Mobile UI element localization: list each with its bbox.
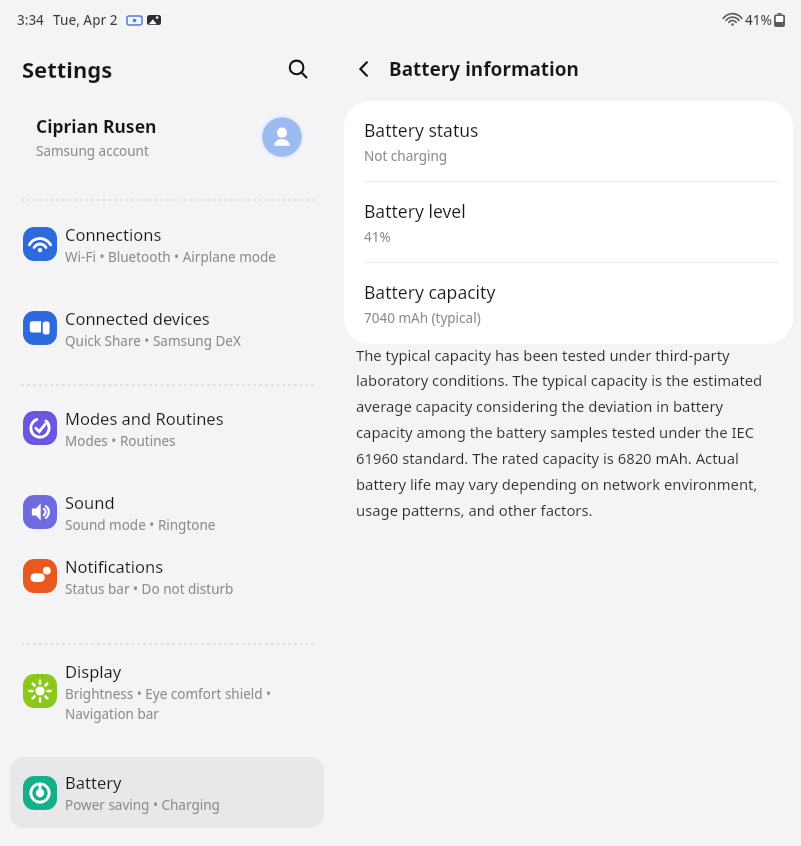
staticText: Display xyxy=(65,660,122,682)
staticText: Status bar • Do not disturb xyxy=(65,580,234,598)
staticText: Wi-Fi • Bluetooth • Airplane mode xyxy=(65,248,276,266)
staticText: Battery information xyxy=(389,56,579,82)
staticText: Modes and Routines xyxy=(65,407,224,429)
staticText: Battery status xyxy=(364,118,479,142)
staticText: Connections xyxy=(65,223,162,245)
staticText: Quick Share • Samsung DeX xyxy=(65,332,241,350)
staticText: Samsung account xyxy=(36,142,149,160)
staticText: Notifications xyxy=(65,555,164,577)
button[interactable]: Search xyxy=(278,49,318,89)
staticText: Sound mode • Ringtone xyxy=(65,516,216,534)
staticText: 7040 mAh (typical) xyxy=(364,309,481,327)
staticText: Power saving • Charging xyxy=(65,796,220,814)
button[interactable]: Connected devices xyxy=(0,296,336,360)
staticText: Brightness • Eye comfort shield • Naviga… xyxy=(65,685,272,723)
button[interactable]: Notifications xyxy=(0,544,336,608)
button[interactable]: Modes and Routines xyxy=(0,396,336,460)
staticText: Connected devices xyxy=(65,307,210,329)
staticText: Settings xyxy=(22,54,113,84)
button[interactable]: Battery status xyxy=(344,101,793,182)
staticText: Battery level xyxy=(364,199,466,223)
staticText: Sound xyxy=(65,491,115,513)
staticText: Ciprian Rusen xyxy=(36,114,157,138)
button[interactable]: Sound xyxy=(0,480,336,544)
staticText: 3:34 xyxy=(17,11,44,29)
staticText: Battery capacity xyxy=(364,280,496,304)
staticText: The typical capacity has been tested und… xyxy=(356,345,781,520)
staticText: Modes • Routines xyxy=(65,432,176,450)
button[interactable]: Battery level xyxy=(344,182,793,263)
staticText: Not charging xyxy=(364,147,448,165)
staticText: 41% xyxy=(364,228,391,246)
button[interactable]: Ciprian Rusen xyxy=(0,98,336,176)
button[interactable]: Back xyxy=(344,49,384,89)
button[interactable]: Connections xyxy=(0,212,336,276)
staticText: 41% xyxy=(745,11,772,29)
button[interactable]: Battery xyxy=(10,757,324,828)
staticText: Tue, Apr 2 xyxy=(53,11,118,29)
button[interactable]: Display xyxy=(0,654,336,728)
staticText: Battery xyxy=(65,771,122,793)
button[interactable]: Battery capacity xyxy=(344,263,793,344)
